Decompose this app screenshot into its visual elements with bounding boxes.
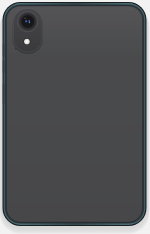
button[interactable]: Phone back view: [0, 0, 150, 234]
